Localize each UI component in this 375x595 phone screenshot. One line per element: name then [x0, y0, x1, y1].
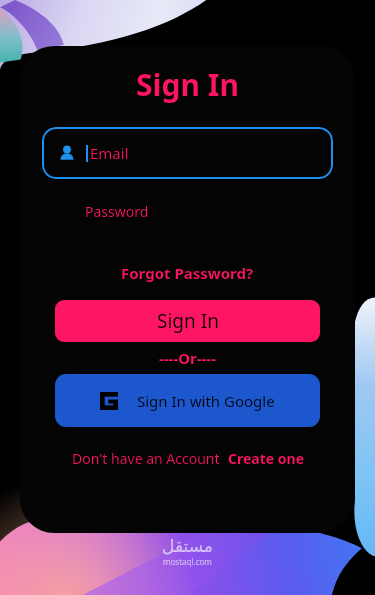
- button[interactable]: Don't have an Account: [72, 449, 220, 468]
- button[interactable]: Sign In with Google: [55, 374, 320, 427]
- button[interactable]: Sign In: [55, 300, 320, 342]
- button[interactable]: Forgot Password?: [121, 263, 254, 283]
- button[interactable]: Email: [42, 127, 333, 179]
- staticText: mostaql.com: [163, 556, 212, 567]
- staticText: Email: [90, 143, 129, 163]
- staticText: مستقل: [162, 536, 213, 556]
- staticText: Sign In: [136, 64, 239, 105]
- button[interactable]: Create one: [228, 449, 304, 468]
- staticText: Sign In with Google: [137, 391, 275, 411]
- staticText: Sign In: [157, 308, 219, 334]
- staticText: ----Or----: [159, 348, 216, 368]
- button[interactable]: Password: [85, 202, 149, 221]
